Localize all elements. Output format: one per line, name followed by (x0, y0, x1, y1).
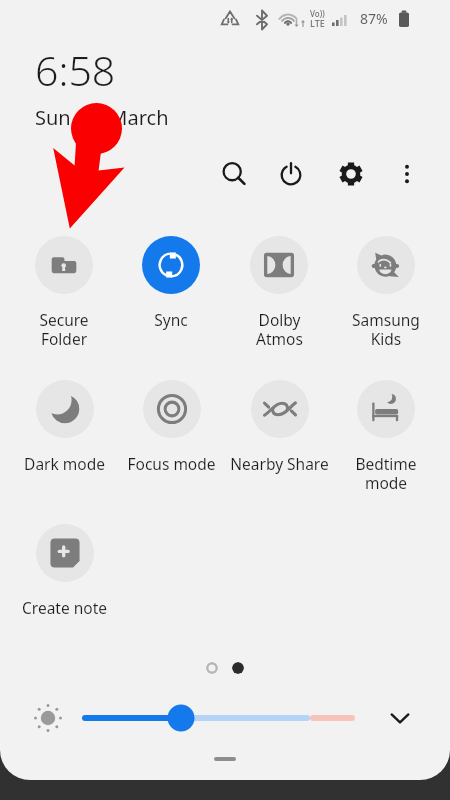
button[interactable]: More options (385, 152, 429, 196)
staticText: Sync (154, 309, 188, 330)
staticText: Secure Folder (39, 309, 89, 349)
staticText: Create note (22, 597, 107, 618)
button[interactable]: Nearby Share (226, 380, 332, 500)
staticText: Dark mode (24, 453, 105, 474)
staticText: Nearby Share (230, 453, 329, 474)
button[interactable]: Samsung Kids (333, 236, 439, 356)
staticText: Bedtime mode (355, 453, 417, 493)
staticText: Dolby Atmos (256, 309, 303, 349)
button[interactable]: Create note (11, 524, 117, 644)
button[interactable]: Power off (269, 152, 313, 196)
staticText: LTE (310, 17, 325, 29)
staticText: Sun, 26 March (35, 104, 169, 131)
button[interactable]: Dolby Atmos (226, 236, 332, 356)
button[interactable]: Page 1 (206, 662, 218, 674)
staticText: Samsung Kids (352, 309, 420, 349)
staticText: 87% (360, 9, 388, 28)
staticText: 6:58 (35, 42, 116, 98)
button[interactable]: Secure Folder (11, 236, 117, 356)
button[interactable]: Focus mode (118, 380, 224, 500)
button[interactable]: Close panel (214, 757, 236, 761)
button[interactable]: Page 2 (232, 662, 244, 674)
button[interactable]: Search (212, 152, 256, 196)
button[interactable]: Dark mode (11, 380, 117, 500)
staticText: Vo)) (310, 8, 325, 19)
button[interactable]: Expand (378, 700, 422, 736)
button[interactable]: Settings (329, 152, 373, 196)
button[interactable]: Sync (118, 236, 224, 356)
button[interactable]: Bedtime mode (333, 380, 439, 500)
staticText: Focus mode (127, 453, 216, 474)
